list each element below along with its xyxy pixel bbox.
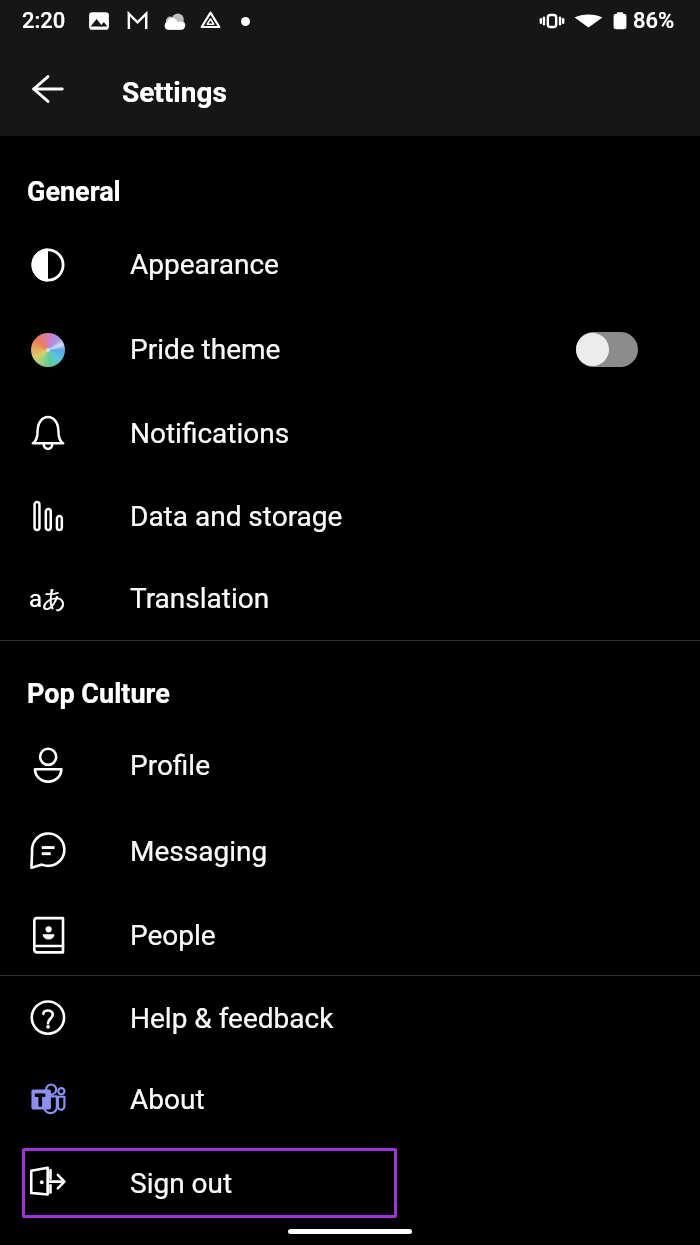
staticText: aあ [29, 584, 67, 614]
button[interactable]: Profile [0, 723, 700, 808]
staticText: Translation [130, 582, 270, 615]
button[interactable]: Pride theme [0, 307, 700, 392]
button[interactable]: Help & feedback [0, 976, 700, 1061]
button[interactable]: About [0, 1057, 700, 1142]
staticText: About [130, 1083, 205, 1116]
staticText: General [27, 176, 121, 208]
button[interactable]: Data and storage [0, 474, 700, 559]
staticText: Appearance [130, 248, 279, 281]
staticText: 2:20 [22, 8, 66, 34]
button[interactable]: Pride theme toggle [576, 332, 638, 367]
button[interactable]: Appearance [0, 222, 700, 307]
staticText: Messaging [130, 835, 268, 868]
staticText: Notifications [130, 417, 290, 450]
button[interactable]: Notifications [0, 391, 700, 476]
staticText: Pop Culture [27, 678, 170, 710]
staticText: Data and storage [130, 500, 343, 533]
button[interactable]: aあ [0, 556, 700, 641]
button[interactable]: Back [19, 66, 77, 124]
staticText: People [130, 919, 216, 952]
staticText: Settings [122, 76, 227, 109]
staticText: Help & feedback [130, 1002, 334, 1035]
button[interactable]: Messaging [0, 809, 700, 894]
staticText: 86% [633, 8, 675, 34]
button[interactable]: People [0, 893, 700, 978]
staticText: Sign out [130, 1167, 233, 1200]
staticText: Pride theme [130, 333, 281, 366]
staticText: Profile [130, 749, 211, 782]
button[interactable]: Sign out [22, 1148, 397, 1218]
